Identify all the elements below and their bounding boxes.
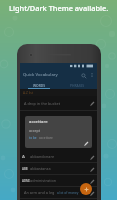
staticText: a lot of money [57, 191, 79, 195]
button[interactable]: WORDS [20, 81, 58, 89]
staticText: An arm and a leg [24, 190, 55, 195]
staticText: A drop in the bucket [24, 101, 61, 106]
staticText: ABB [22, 167, 28, 171]
staticText: Quick Vocabulary [23, 72, 58, 78]
button[interactable]: A drop in the bucket [20, 96, 97, 110]
staticText: WORDS [33, 83, 45, 87]
staticText: A-Z list [23, 91, 34, 95]
staticText: abbastanza [30, 166, 51, 171]
button[interactable]: Add word [80, 183, 92, 195]
button[interactable]: PHRASES [58, 81, 97, 89]
staticText: accettare [29, 119, 48, 125]
staticText: to be [29, 136, 37, 140]
button[interactable]: ABB [20, 163, 97, 174]
button[interactable]: Quick Vocabulary [20, 69, 97, 81]
button[interactable]: Edit [88, 99, 96, 107]
button[interactable]: accettare [25, 116, 92, 148]
button[interactable]: A [20, 151, 97, 162]
staticText: PHRASES [70, 83, 85, 87]
button[interactable]: More options [88, 71, 96, 79]
button[interactable]: Edit [88, 165, 96, 173]
staticText: ADMIN [22, 179, 30, 183]
staticText: accept [29, 128, 41, 133]
button[interactable]: Search [79, 71, 88, 80]
staticText: Light/Dark Theme available. [9, 3, 109, 13]
button[interactable]: Edit [88, 177, 96, 185]
staticText: abbandonare [30, 154, 55, 159]
button[interactable]: Edit [82, 139, 90, 147]
button[interactable]: Edit [88, 153, 96, 161]
button[interactable]: An arm and a leg [20, 187, 97, 198]
button[interactable]: ADMIN [20, 175, 97, 186]
staticText: accettare [39, 136, 53, 140]
button[interactable]: Edit [88, 189, 96, 197]
staticText: A [22, 154, 25, 160]
staticText: administration [30, 178, 57, 183]
